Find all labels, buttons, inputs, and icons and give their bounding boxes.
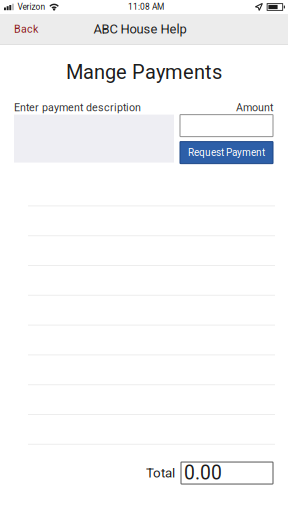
staticText: 0.00 [184,462,222,484]
staticText: Enter payment description [14,101,141,114]
staticText: Mange Payments [66,60,222,84]
staticText: ABC House Help [93,21,186,37]
staticText: Total [146,465,175,481]
staticText: Amount [236,101,273,114]
staticText: Verizon [17,2,45,12]
button[interactable]: Request Payment [180,142,273,164]
staticText: 11:08 AM [128,2,164,12]
staticText: Request Payment [188,147,265,158]
staticText: Back [14,23,38,35]
button[interactable]: Back [0,14,50,44]
